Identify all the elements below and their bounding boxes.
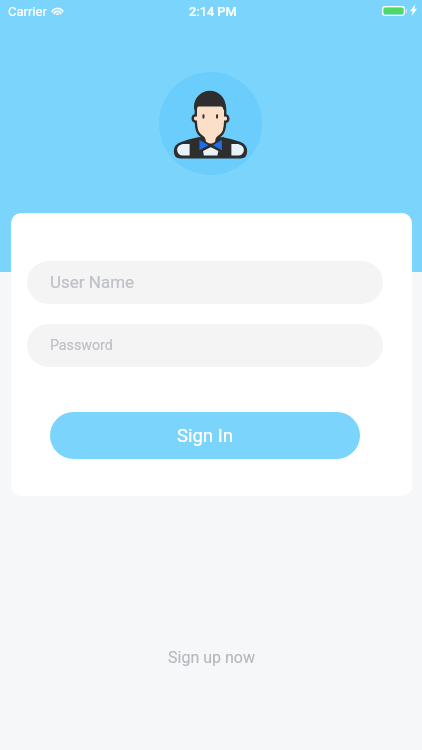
staticText: Sign In: [177, 425, 233, 447]
button[interactable]: Sign In: [50, 412, 360, 459]
button[interactable]: Sign up now: [160, 640, 263, 675]
button[interactable]: Password: [27, 324, 383, 367]
staticText: 2:14 PM: [189, 4, 237, 19]
staticText: Carrier: [8, 4, 47, 19]
button[interactable]: User Name: [27, 261, 383, 304]
staticText: Sign up now: [168, 648, 255, 667]
staticText: Password: [50, 337, 113, 354]
staticText: User Name: [50, 272, 135, 292]
